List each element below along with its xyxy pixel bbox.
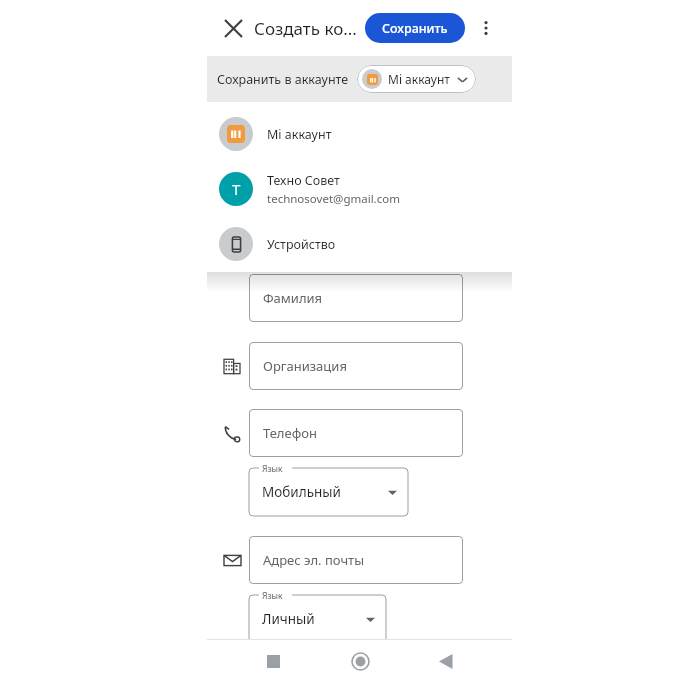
staticText: Организация [263,357,347,375]
button[interactable]: Mi аккаунт [207,108,512,160]
staticText: Мобильный [262,483,341,501]
button[interactable]: Язык [249,595,386,643]
staticText: technosovet@gmail.com [267,191,400,207]
staticText: Mi аккаунт [267,126,332,143]
button[interactable]: Язык [249,468,408,516]
staticText: Личный [262,610,315,628]
button[interactable]: Адрес эл. почты [249,536,463,584]
button[interactable]: Сохранить [365,13,465,43]
staticText: Техно Совет [267,172,340,189]
button[interactable]: Фамилия [249,274,463,322]
staticText: Устройство [267,236,336,253]
button[interactable]: Устройство [207,218,512,270]
button[interactable]: Организация [249,342,463,390]
button[interactable]: Телефон [249,409,463,457]
staticText: T [232,179,241,199]
button[interactable]: Back [426,641,466,681]
button[interactable]: Mi аккаунт [357,65,476,93]
button[interactable]: Close [213,8,253,48]
staticText: Язык [262,590,283,602]
button[interactable]: Home [340,641,380,681]
staticText: Язык [262,463,283,475]
staticText: Адрес эл. почты [263,551,364,569]
button[interactable]: More options [468,10,504,46]
staticText: Сохранить в аккаунте [217,71,349,88]
staticText: Mi аккаунт [388,71,450,87]
staticText: Сохранить [382,20,448,37]
staticText: Фамилия [263,289,323,307]
button[interactable]: Сохранить в аккаунте [207,56,512,102]
staticText: Создать ко... [254,17,357,40]
button[interactable]: T [207,160,512,218]
button[interactable]: Recents [253,641,293,681]
staticText: Телефон [263,424,317,442]
